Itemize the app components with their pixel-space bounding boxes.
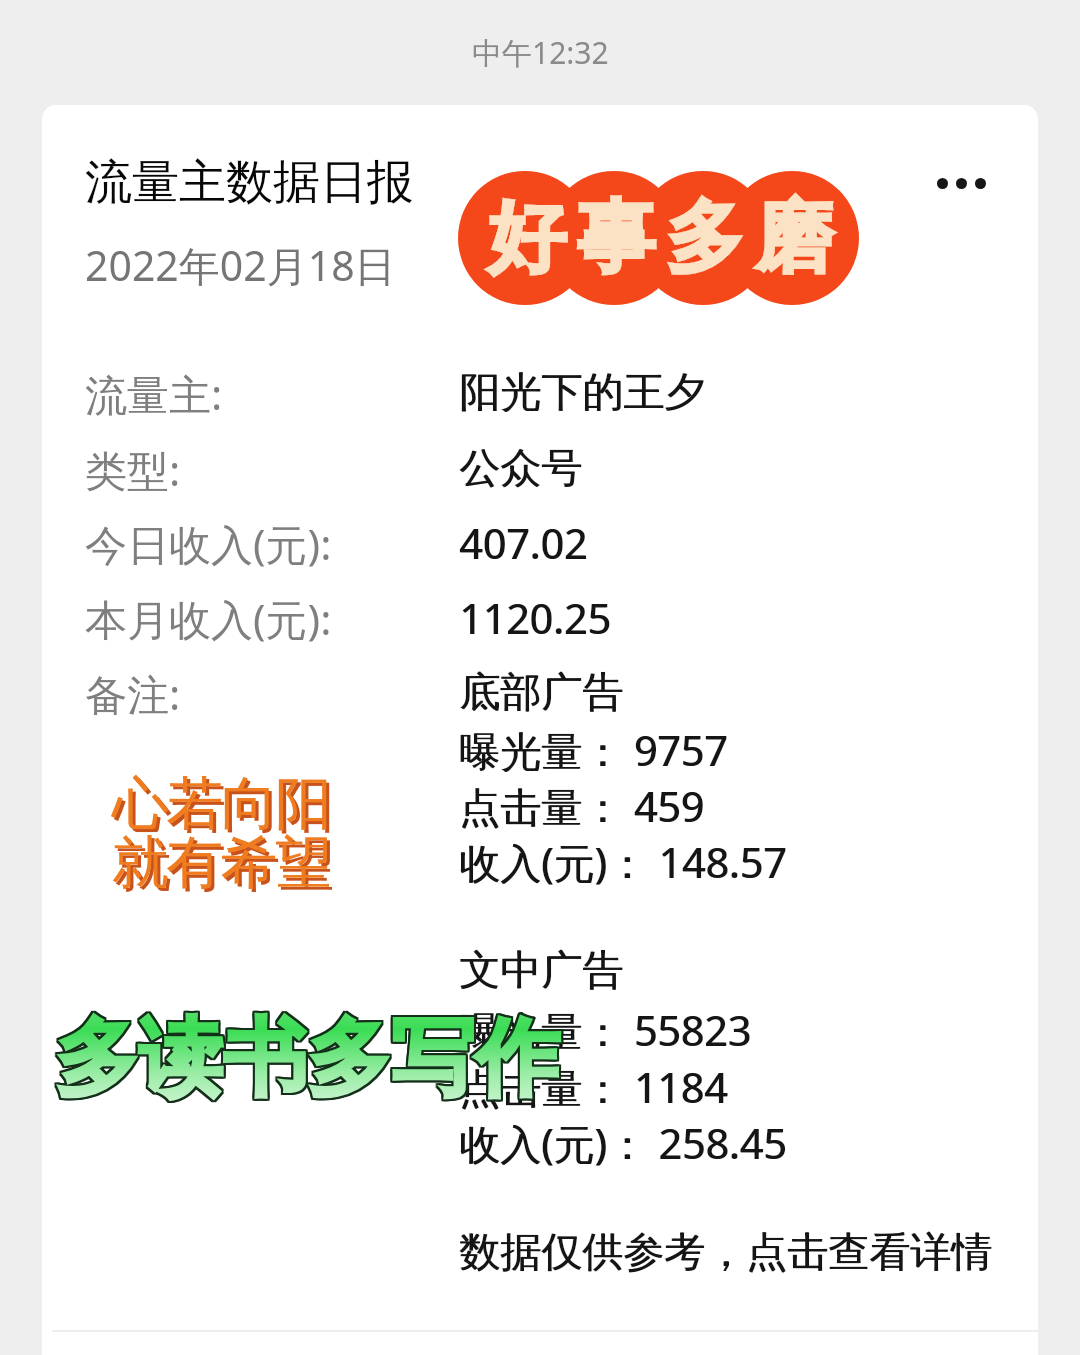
staticText: 多读书多写作: [55, 1007, 559, 1113]
staticText: 流量主:: [85, 365, 223, 422]
staticText: 类型:: [85, 441, 181, 498]
staticText: 多: [666, 189, 744, 287]
staticText: 事: [577, 189, 655, 287]
staticText: 数据仅供参考，点击查看详情: [459, 1227, 992, 1279]
staticText: 多读书多写作: [56, 1004, 560, 1110]
staticText: 文中广告: [460, 945, 624, 997]
staticText: 数据仅供参考，点击查看详情: [460, 1227, 993, 1279]
staticText: 收入(元)： 148.57: [459, 834, 787, 890]
staticText: 多读书多写作: [55, 1004, 559, 1110]
staticText: 曝光量： 9757: [459, 722, 728, 778]
staticText: 多读书多写作: [55, 1005, 559, 1111]
staticText: 公众号: [460, 443, 583, 495]
staticText: 多读书多写作: [54, 1004, 558, 1110]
staticText: 多读书多写作: [53, 1005, 557, 1111]
staticText: 曝光量： 55823: [460, 1002, 752, 1058]
staticText: 文中广告: [459, 945, 623, 997]
staticText: 多读书多写作: [57, 1008, 561, 1114]
staticText: 点击量： 459: [460, 778, 706, 834]
staticText: 曝光量： 9757: [460, 722, 729, 778]
staticText: 多读书多写作: [56, 1006, 560, 1112]
staticText: 多读书多写作: [56, 1005, 560, 1111]
staticText: 多读书多写作: [57, 1004, 561, 1110]
staticText: 今日收入(元):: [85, 515, 332, 572]
staticText: 阳光下的王夕: [460, 367, 706, 419]
staticText: 多读书多写作: [53, 1004, 557, 1110]
staticText: 多读书多写作: [54, 1005, 558, 1111]
staticText: 2022年02月18日: [85, 237, 396, 293]
staticText: 点击量： 1184: [460, 1059, 729, 1115]
staticText: 收入(元)： 148.57: [460, 834, 788, 890]
staticText: 公众号: [459, 443, 582, 495]
staticText: 就有希望: [116, 830, 334, 902]
staticText: 407.02: [460, 515, 589, 571]
staticText: 多读书多写作: [53, 1008, 557, 1114]
staticText: 多读书多写作: [56, 1008, 560, 1114]
button[interactable]: 数据仅供参考，点击查看详情: [42, 1215, 1038, 1291]
staticText: 磨: [755, 189, 833, 287]
staticText: 多读书多写作: [53, 1007, 557, 1113]
staticText: 多读书多写作: [57, 1006, 561, 1112]
staticText: 多读书多写作: [55, 1006, 559, 1112]
staticText: 多读书多写作: [54, 1007, 558, 1113]
staticText: 点击量： 1184: [459, 1059, 728, 1115]
staticText: 中午12:32: [472, 32, 609, 73]
button[interactable]: 流量主数据日报: [42, 105, 1038, 1355]
staticText: 心若向阳: [113, 768, 331, 840]
staticText: 多读书多写作: [53, 1006, 557, 1112]
staticText: 本月收入(元):: [85, 590, 332, 647]
staticText: 心若向阳: [116, 771, 334, 843]
staticText: 多读书多写作: [57, 1005, 561, 1111]
staticText: 底部广告: [460, 667, 624, 719]
staticText: 多读书多写作: [57, 1007, 561, 1113]
staticText: 流量主数据日报: [85, 153, 414, 212]
staticText: 多读书多写作: [56, 1007, 560, 1113]
button[interactable]: More options: [911, 148, 1011, 218]
staticText: 收入(元)： 258.45: [460, 1115, 788, 1171]
staticText: 407.02: [459, 515, 588, 571]
staticText: 1120.25: [459, 590, 611, 646]
staticText: 就有希望: [113, 827, 331, 899]
staticText: 阳光下的王夕: [459, 367, 705, 419]
staticText: 点击量： 459: [459, 778, 705, 834]
staticText: 多读书多写作: [54, 1006, 558, 1112]
staticText: 收入(元)： 258.45: [459, 1115, 787, 1171]
staticText: 底部广告: [459, 667, 623, 719]
staticText: 多读书多写作: [55, 1008, 559, 1114]
staticText: 多读书多写作: [54, 1008, 558, 1114]
staticText: 曝光量： 55823: [459, 1002, 751, 1058]
staticText: 备注:: [85, 665, 181, 722]
staticText: 1120.25: [460, 590, 612, 646]
staticText: 好: [488, 189, 566, 287]
